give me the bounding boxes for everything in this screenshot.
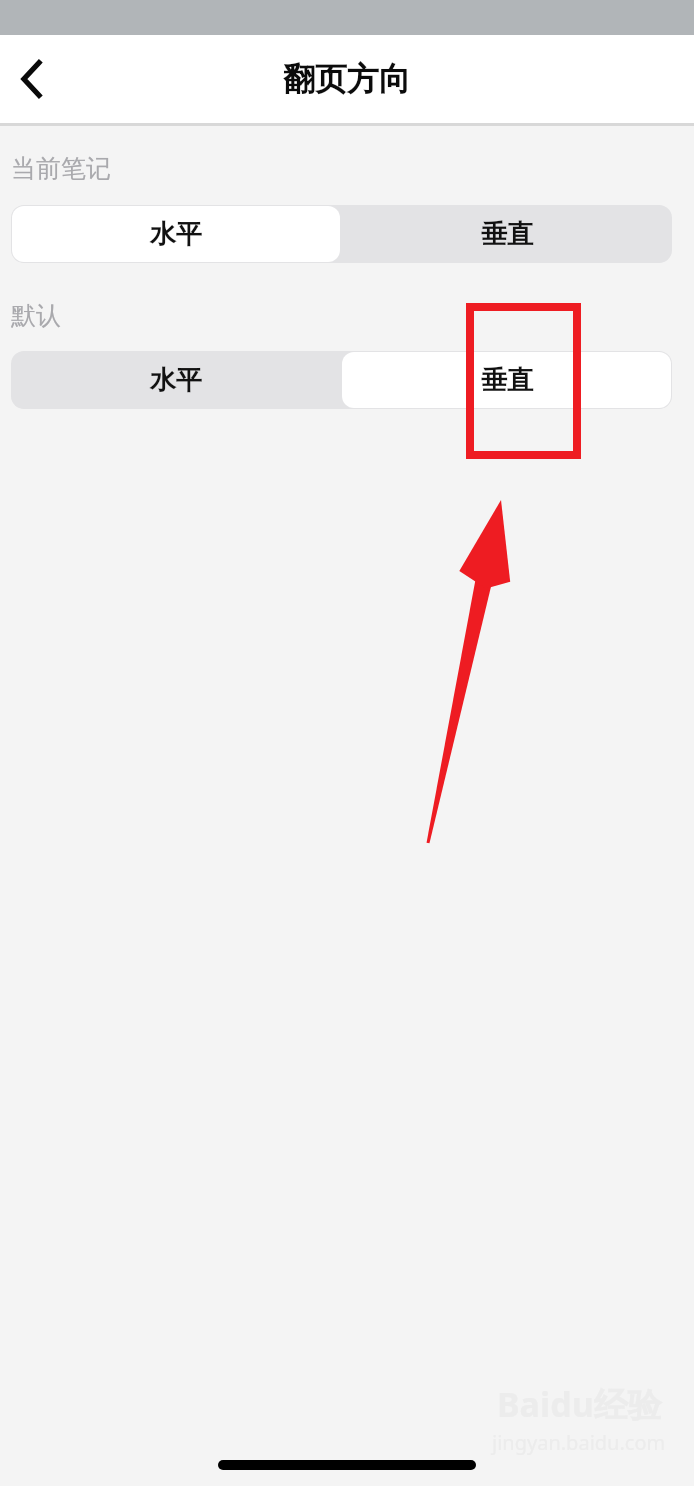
button[interactable]: Back xyxy=(4,51,60,107)
staticText: Baidu经验 xyxy=(497,1381,662,1427)
staticText: 垂直 xyxy=(481,218,533,251)
staticText: 垂直 xyxy=(481,364,533,397)
staticText: 水平 xyxy=(150,218,202,251)
staticText: 当前笔记 xyxy=(11,153,111,184)
button[interactable]: 水平 xyxy=(12,352,340,408)
button[interactable]: 垂直 xyxy=(342,352,671,408)
staticText: 水平 xyxy=(150,364,202,397)
staticText: 翻页方向 xyxy=(283,59,411,99)
button[interactable]: 水平 xyxy=(12,206,340,262)
button[interactable]: 垂直 xyxy=(342,206,671,262)
staticText: 默认 xyxy=(11,300,61,331)
